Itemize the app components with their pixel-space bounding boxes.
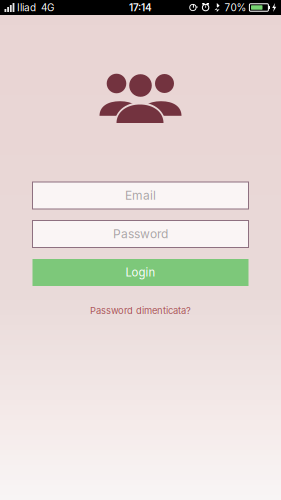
staticText: Email: [125, 188, 156, 203]
staticText: 70%: [224, 1, 246, 14]
staticText: 4G: [41, 1, 54, 14]
button[interactable]: Login: [32, 259, 248, 286]
staticText: Password: [113, 227, 168, 241]
button[interactable]: Password dimenticata?: [90, 305, 191, 316]
staticText: Login: [125, 266, 155, 279]
button[interactable]: Password: [32, 220, 248, 247]
staticText: Password dimenticata?: [90, 305, 191, 316]
button[interactable]: Email: [32, 182, 248, 209]
staticText: 17:14: [129, 1, 152, 14]
staticText: Iliad: [17, 1, 36, 14]
